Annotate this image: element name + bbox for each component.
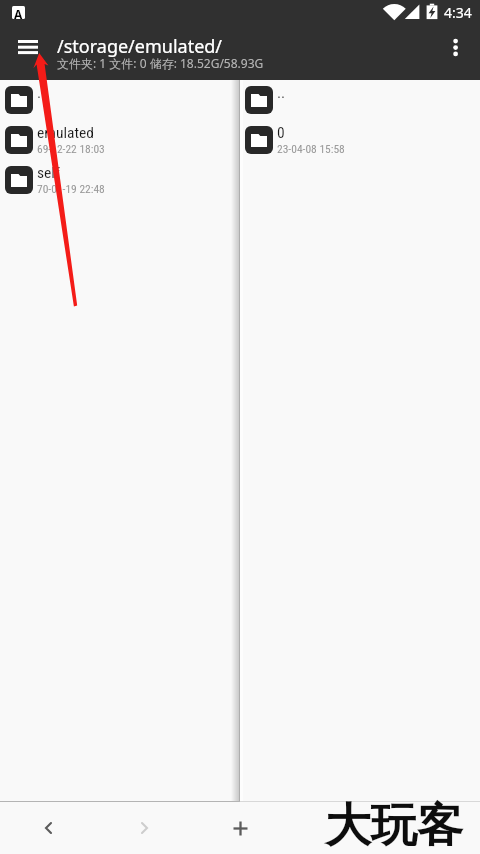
button[interactable]: .. <box>240 80 480 120</box>
button[interactable]: Add <box>192 802 288 854</box>
button[interactable]: Forward <box>96 802 192 854</box>
staticText: /storage/emulated/ <box>57 34 223 59</box>
staticText: .. <box>37 84 46 102</box>
button[interactable]: Back <box>0 802 96 854</box>
staticText: 70-01-19 22:48 <box>37 182 105 195</box>
staticText: 0 <box>277 124 285 142</box>
staticText: self <box>37 164 60 182</box>
button[interactable]: self <box>0 160 239 200</box>
button[interactable]: .. <box>0 80 239 120</box>
button[interactable]: Options <box>384 802 480 854</box>
button[interactable]: emulated <box>0 120 239 160</box>
button[interactable]: 0 <box>240 120 480 160</box>
staticText: 23-04-08 15:58 <box>277 142 345 155</box>
button[interactable]: More options <box>434 28 478 72</box>
button[interactable]: Select all <box>288 802 384 854</box>
staticText: .. <box>277 84 286 102</box>
staticText: emulated <box>37 124 94 142</box>
staticText: 大玩客 <box>325 797 463 854</box>
button[interactable]: Navigation menu <box>6 29 48 71</box>
staticText: A <box>14 6 23 19</box>
staticText: 69-12-22 18:03 <box>37 142 105 155</box>
staticText: 文件夹: 1 文件: 0 储存: 18.52G/58.93G <box>57 55 264 71</box>
staticText: 4:34 <box>444 3 472 22</box>
